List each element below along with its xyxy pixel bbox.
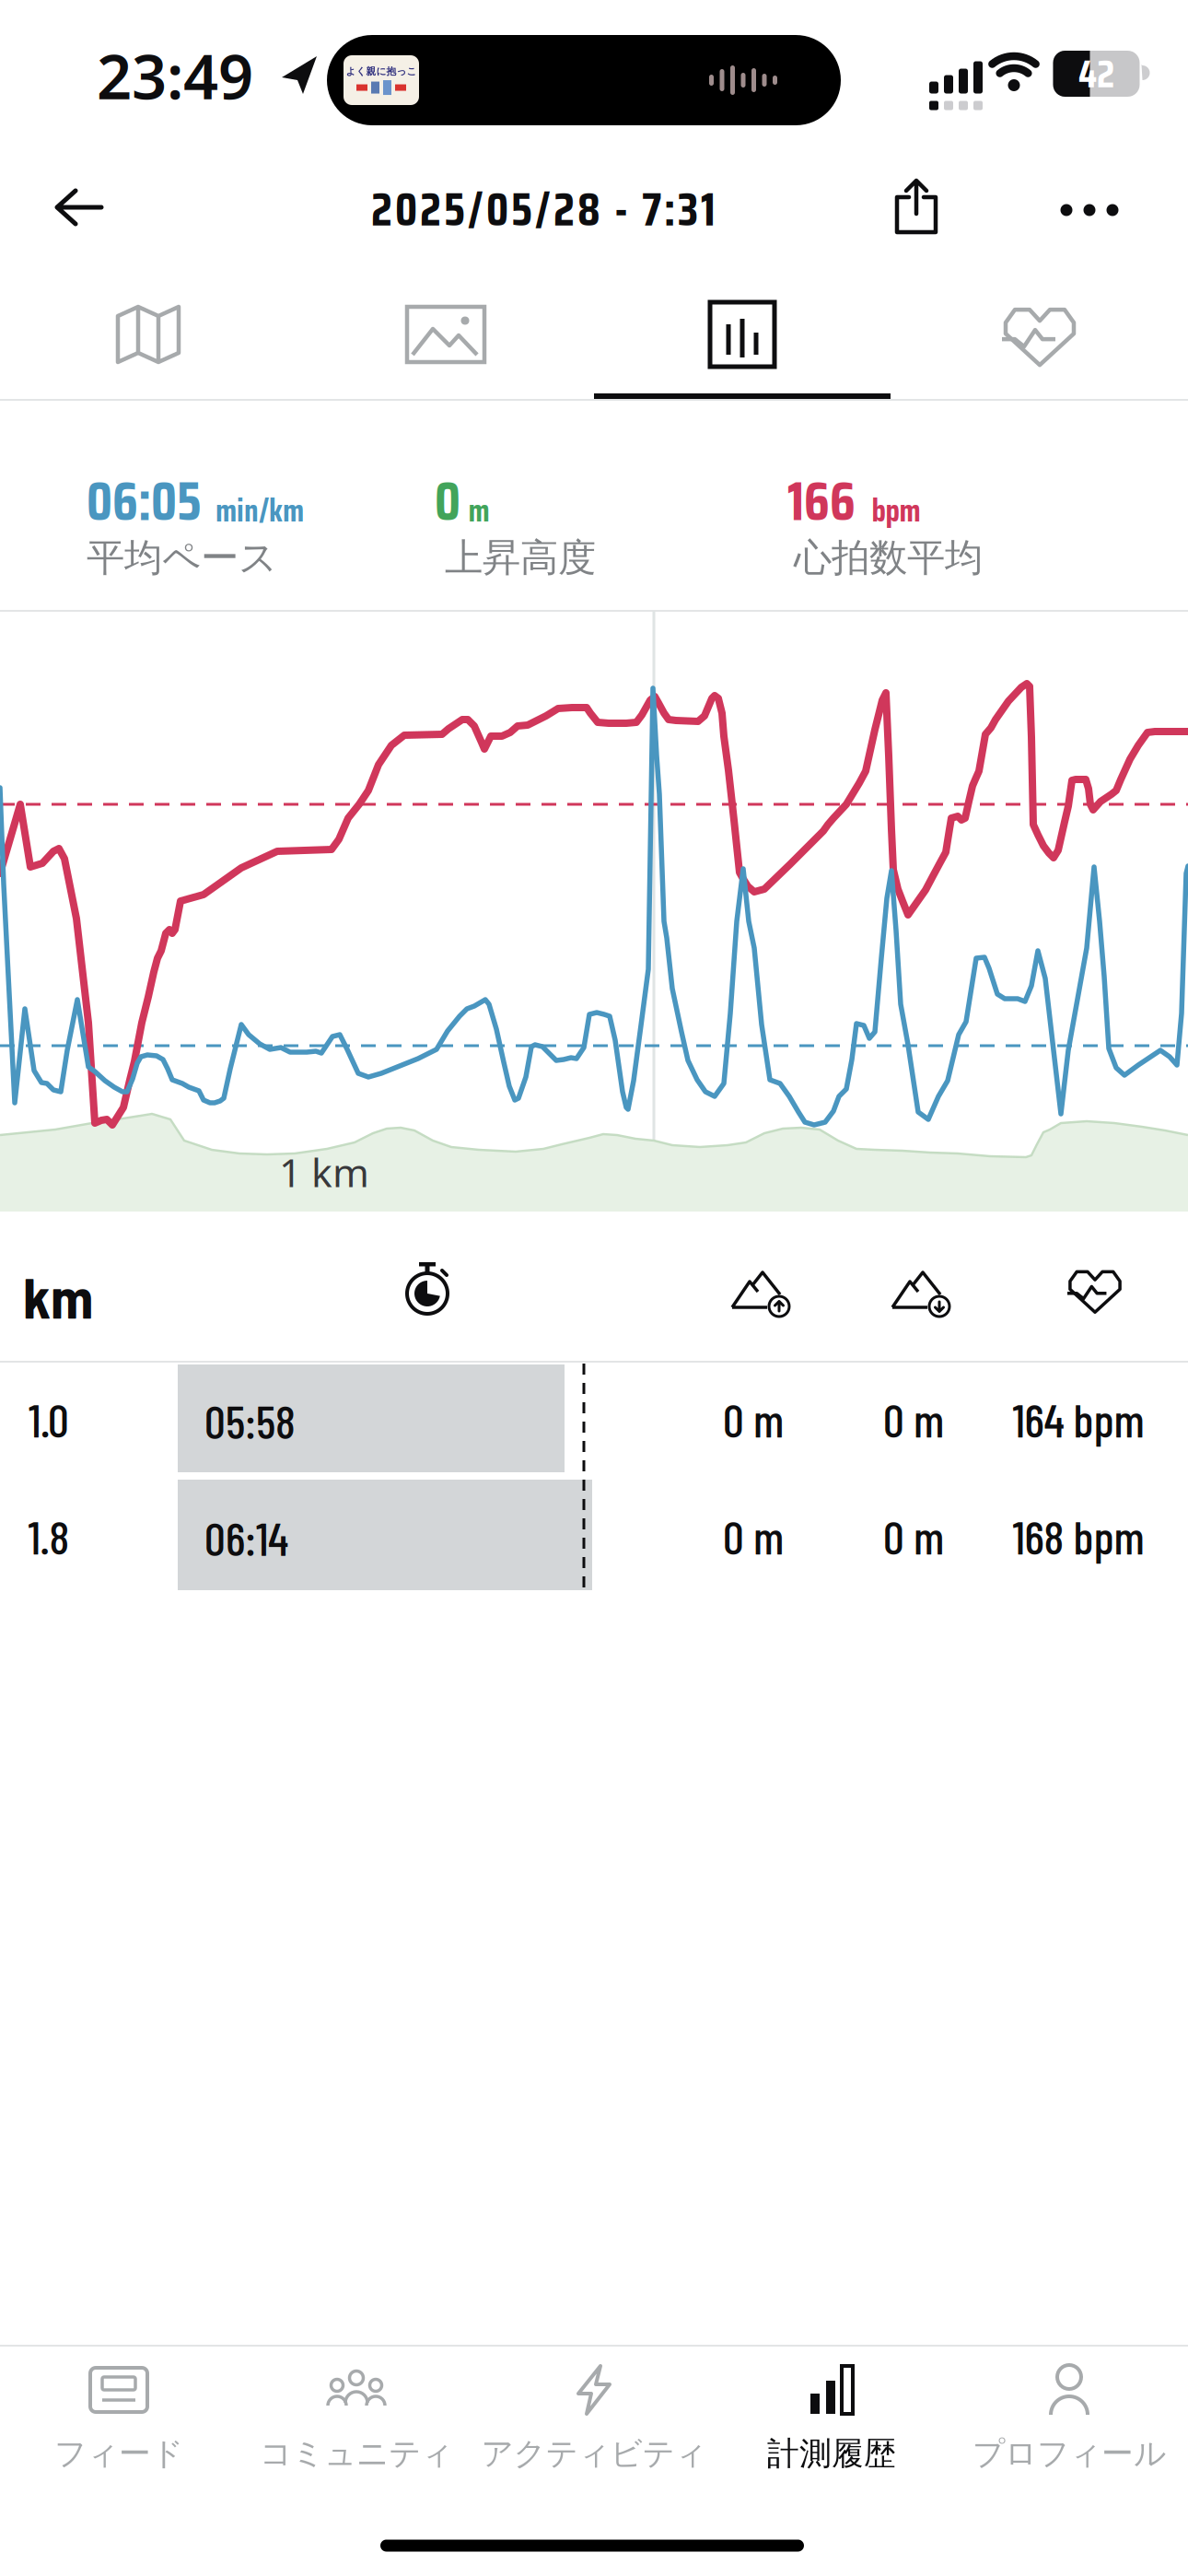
staticText: コミュニティ [260,2434,453,2473]
button[interactable]: Charts [697,289,787,380]
staticText: フィード [54,2434,183,2473]
staticText: 2025/05/28 - 7:31 [371,172,716,246]
button[interactable]: プロフィール [950,2364,1188,2473]
button[interactable]: 計測履歴 [713,2364,950,2473]
staticText: min/km [215,485,304,536]
staticText: 0 m [723,1508,784,1564]
staticText: よく親に抱っこ [346,65,417,77]
staticText: 1 km [279,1146,369,1198]
staticText: 計測履歴 [767,2434,896,2473]
staticText: 0 m [883,1508,944,1564]
staticText: 1.8 [28,1508,70,1564]
staticText: 42 [1078,43,1114,105]
staticText: 平均ペース [87,534,277,581]
staticText: 164 bpm [1013,1391,1144,1447]
staticText: 0 m [723,1391,784,1447]
staticText: 0 [435,459,460,544]
button[interactable]: Map [102,291,194,378]
button[interactable]: Photos [394,294,497,375]
staticText: 168 bpm [1013,1508,1144,1564]
staticText: 心拍数平均 [794,534,983,581]
staticText: 1.0 [29,1391,69,1447]
staticText: bpm [872,485,920,536]
staticText: 23:49 [97,35,253,116]
button[interactable]: Back [46,179,112,236]
staticText: 06:05 [87,459,202,544]
button[interactable]: コミュニティ [238,2364,475,2473]
staticText: アクティビティ [481,2434,707,2473]
staticText: 166 [787,459,856,544]
button[interactable]: アクティビティ [475,2364,713,2473]
staticText: km [23,1262,93,1330]
button[interactable]: More options [1051,195,1128,225]
staticText: m [468,485,489,536]
button[interactable]: フィード [0,2364,238,2473]
button[interactable]: Share [887,171,946,241]
button[interactable]: Heart rate [989,289,1090,379]
staticText: 0 m [883,1391,944,1447]
staticText: 06:14 [204,1509,288,1565]
staticText: 上昇高度 [445,534,596,581]
staticText: 05:58 [204,1392,296,1448]
staticText: プロフィール [973,2434,1166,2473]
